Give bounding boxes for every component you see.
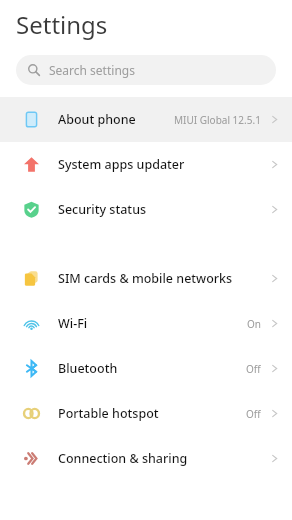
staticText: Security status — [58, 201, 147, 218]
staticText: Off — [246, 407, 261, 421]
staticText: System apps updater — [58, 156, 185, 173]
staticText: SIM cards & mobile networks — [58, 270, 233, 287]
staticText: Portable hotspot — [58, 405, 159, 422]
staticText: Off — [246, 362, 261, 376]
button[interactable]: About phone — [0, 97, 292, 142]
button[interactable]: SIM cards & mobile networks — [0, 256, 292, 301]
staticText: About phone — [58, 111, 136, 128]
button[interactable]: Portable hotspot — [0, 391, 292, 436]
staticText: Bluetooth — [58, 360, 118, 377]
button[interactable]: Wi-Fi — [0, 301, 292, 346]
button[interactable]: Security status — [0, 187, 292, 232]
button[interactable]: Connection & sharing — [0, 436, 292, 481]
button[interactable]: System apps updater — [0, 142, 292, 187]
staticText: Search settings — [49, 62, 135, 78]
staticText: On — [247, 317, 261, 331]
staticText: Connection & sharing — [58, 450, 188, 467]
button[interactable]: Search settings — [16, 55, 276, 85]
button[interactable]: Bluetooth — [0, 346, 292, 391]
staticText: Wi-Fi — [58, 315, 88, 332]
staticText: Settings — [16, 8, 108, 41]
staticText: MIUI Global 12.5.1 — [174, 113, 261, 127]
